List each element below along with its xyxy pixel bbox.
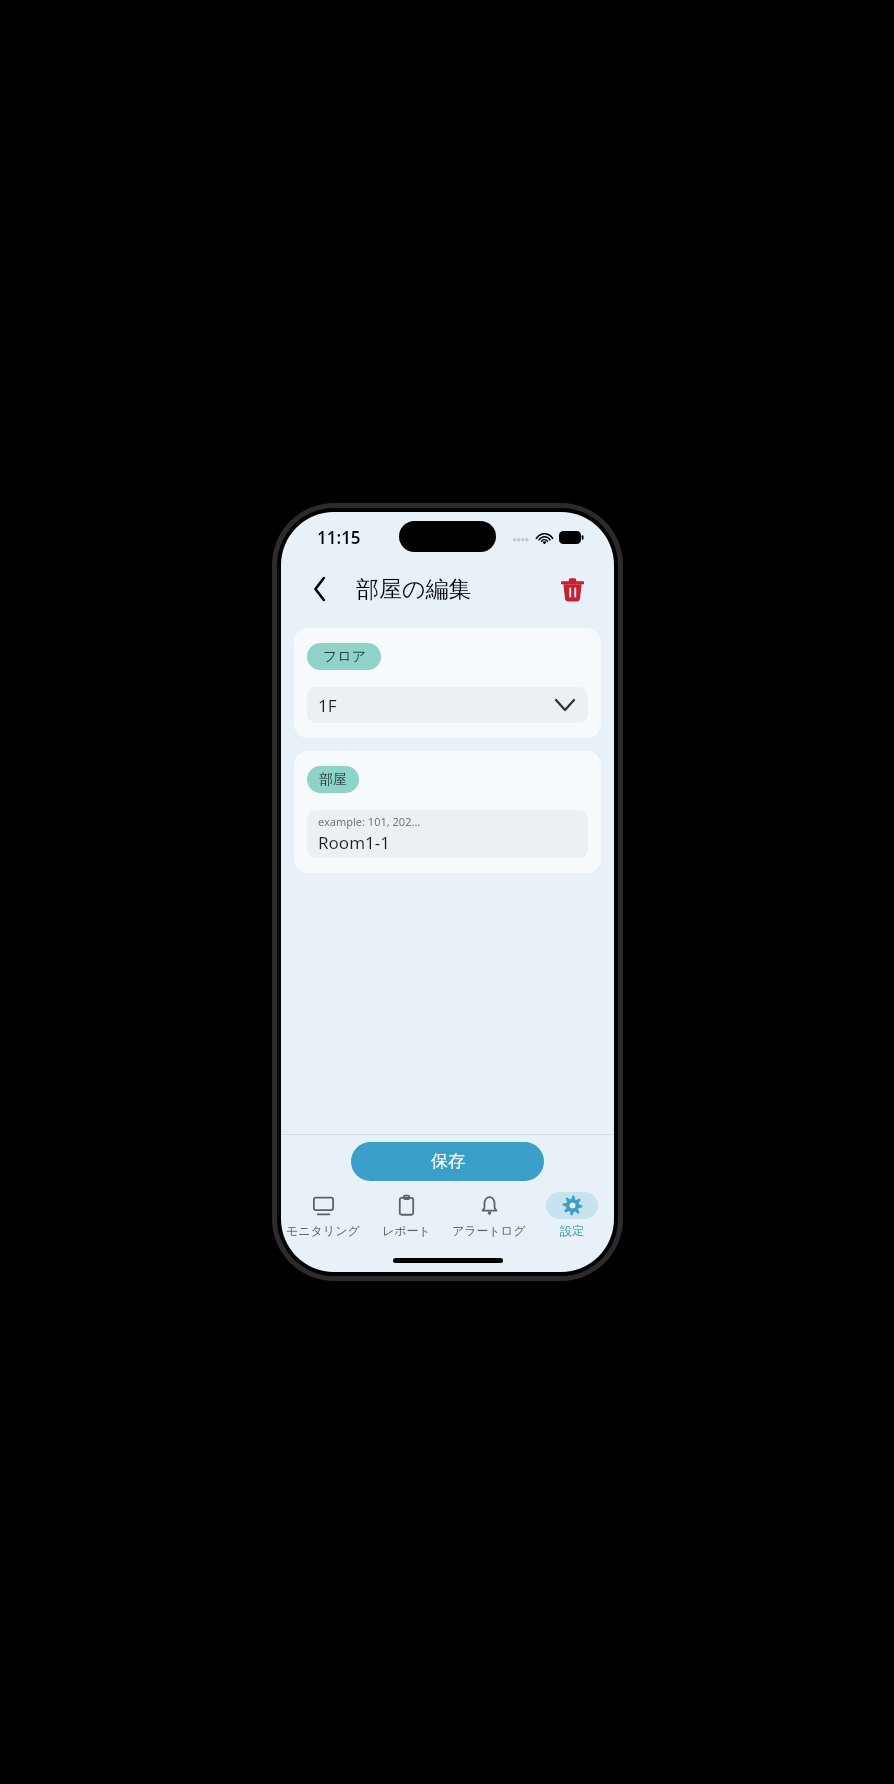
staticText: 設定 (560, 1223, 584, 1238)
staticText: モニタリング (286, 1223, 360, 1238)
staticText: 保存 (431, 1151, 465, 1172)
button[interactable]: example: 101, 202... (307, 810, 588, 858)
button[interactable]: アラートログ (448, 1192, 530, 1238)
button[interactable]: 保存 (351, 1142, 544, 1181)
staticText: フロア (323, 648, 366, 666)
button[interactable]: 1F (307, 687, 588, 723)
button[interactable]: Back (303, 572, 337, 606)
staticText: Room1-1 (318, 831, 390, 854)
staticText: 部屋の編集 (356, 575, 472, 604)
staticText: 1F (318, 694, 337, 717)
button[interactable]: モニタリング (282, 1192, 364, 1238)
button[interactable]: 設定 (531, 1192, 613, 1238)
staticText: アラートログ (452, 1223, 526, 1238)
button[interactable]: Delete (555, 572, 589, 606)
button[interactable]: レポート (365, 1192, 447, 1238)
staticText: example: 101, 202... (318, 814, 421, 829)
staticText: 11:15 (317, 526, 361, 549)
staticText: 部屋 (319, 771, 347, 789)
staticText: レポート (382, 1223, 431, 1238)
